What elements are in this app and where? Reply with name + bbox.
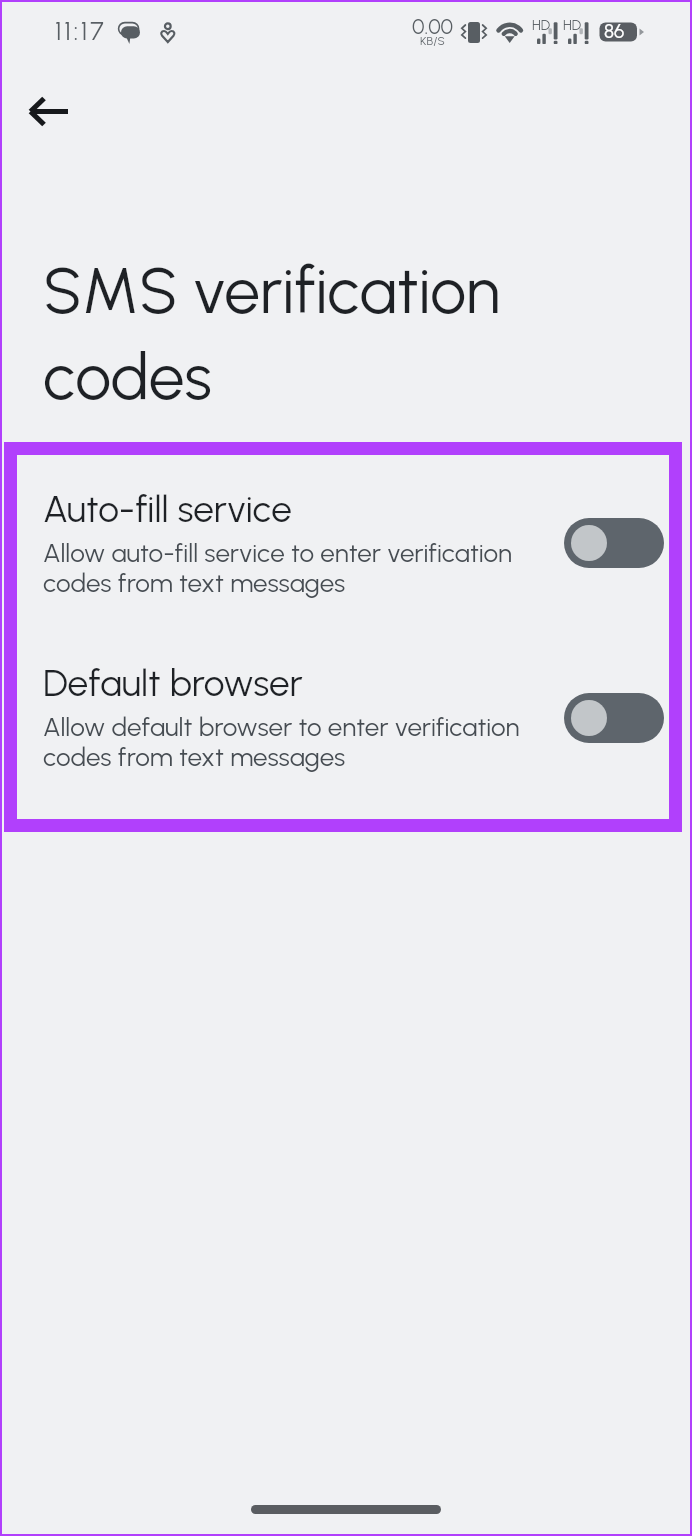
staticText: SMS verification: [43, 252, 501, 329]
staticText: 0.00: [412, 14, 454, 39]
button[interactable]: Toggle Auto-fill service: [564, 518, 664, 568]
staticText: HD: [532, 17, 551, 34]
button[interactable]: [0, 478, 692, 598]
staticText: Allow default browser to enter verificat…: [43, 711, 520, 742]
staticText: Allow auto-fill service to enter verific…: [43, 537, 512, 568]
staticText: 86: [604, 20, 625, 43]
staticText: HD: [563, 17, 582, 34]
staticText: codes: [43, 338, 212, 415]
staticText: codes from text messages: [43, 741, 346, 772]
button[interactable]: Back: [22, 87, 78, 143]
staticText: KB/S: [420, 34, 445, 48]
staticText: codes from text messages: [43, 567, 346, 598]
staticText: 11:17: [55, 16, 107, 46]
staticText: Auto-fill service: [43, 487, 292, 531]
button[interactable]: [0, 652, 692, 772]
button[interactable]: Toggle Default browser: [564, 693, 664, 743]
staticText: Default browser: [43, 661, 303, 705]
